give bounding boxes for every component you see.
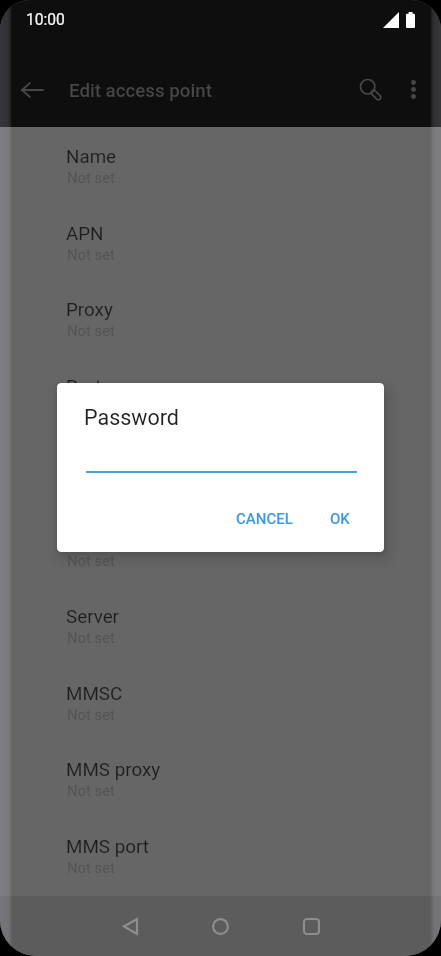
button[interactable]: APN <box>0 214 441 291</box>
button[interactable]: Password <box>0 520 441 597</box>
button[interactable]: Name <box>0 137 441 214</box>
button[interactable]: OK <box>322 502 358 536</box>
button[interactable]: MMS proxy <box>0 750 441 827</box>
button[interactable]: Port <box>0 367 441 444</box>
button[interactable]: Server <box>0 597 441 674</box>
staticText: MMS proxy <box>66 759 161 781</box>
button[interactable]: Navigate up <box>10 68 54 112</box>
staticText: Password <box>84 405 179 430</box>
staticText: Proxy <box>66 299 113 321</box>
staticText: Port <box>66 376 102 398</box>
staticText: Username <box>66 453 152 475</box>
staticText: APN <box>66 223 104 245</box>
button[interactable]: MMSC <box>0 674 441 751</box>
button[interactable]: Recent apps <box>289 904 333 948</box>
button[interactable]: Home <box>198 904 242 948</box>
button[interactable]: More options <box>391 67 435 111</box>
button[interactable]: Username <box>0 444 441 521</box>
staticText: Not set <box>67 629 115 646</box>
staticText: 10:00 <box>26 11 65 29</box>
staticText: Edit access point <box>69 80 212 102</box>
staticText: Not set <box>67 706 115 723</box>
staticText: Not set <box>67 322 115 339</box>
staticText: Not set <box>67 859 115 876</box>
staticText: Name <box>66 146 117 168</box>
staticText: Not set <box>67 782 115 799</box>
staticText: Not set <box>67 399 115 416</box>
button[interactable]: Search <box>348 67 392 111</box>
staticText: Not set <box>67 552 115 569</box>
staticText: Not set <box>67 246 115 263</box>
staticText: Not set <box>67 169 115 186</box>
button[interactable]: Back <box>108 904 152 948</box>
staticText: MMS port <box>66 836 149 858</box>
staticText: CANCEL <box>236 510 293 528</box>
button[interactable]: CANCEL <box>228 502 301 536</box>
staticText: Server <box>66 606 119 628</box>
staticText: MMSC <box>66 683 123 705</box>
button[interactable]: Proxy <box>0 290 441 367</box>
button[interactable]: MMS port <box>0 827 441 904</box>
staticText: OK <box>330 510 350 528</box>
